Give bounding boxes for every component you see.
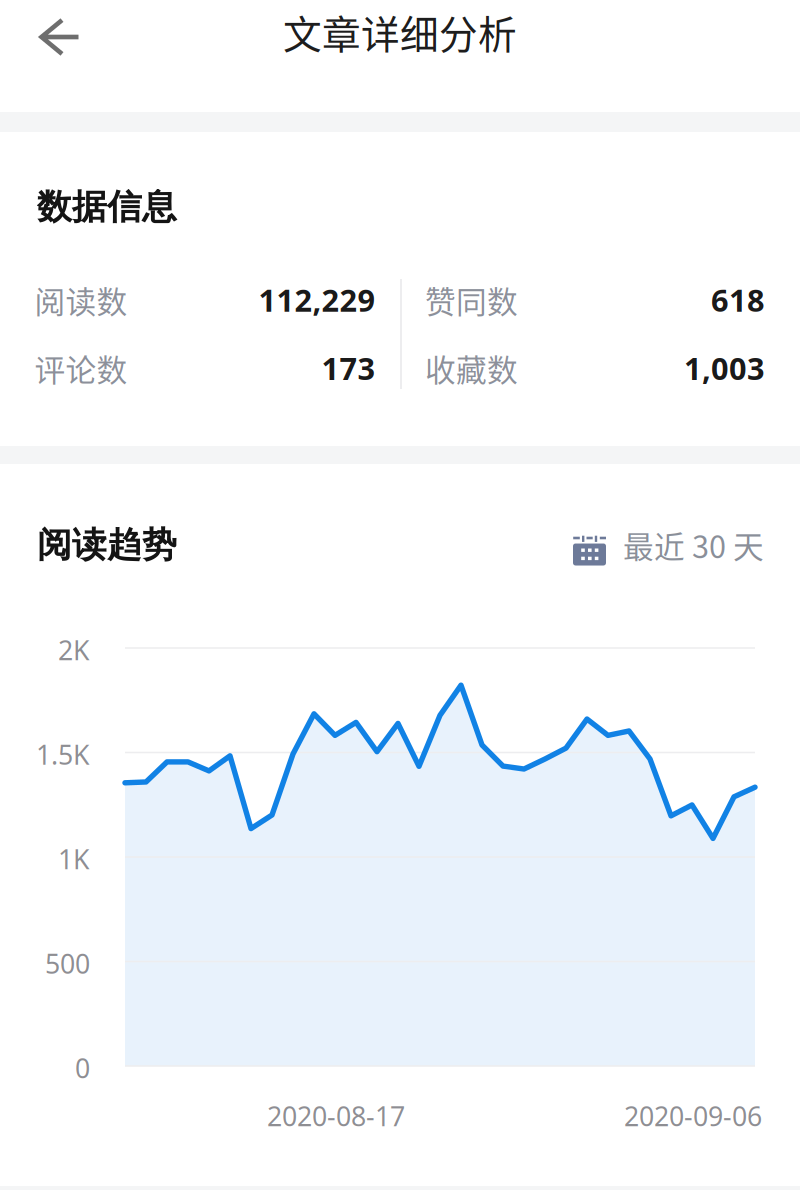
staticText: 2020-09-06 bbox=[624, 1098, 762, 1134]
staticText: 阅读数 bbox=[34, 278, 127, 322]
staticText: 1.5K bbox=[36, 737, 90, 772]
staticText: 数据信息 bbox=[37, 185, 177, 229]
staticText: 618 bbox=[711, 279, 765, 320]
button[interactable]: Back bbox=[0, 0, 108, 87]
staticText: 500 bbox=[45, 946, 90, 981]
staticText: 收藏数 bbox=[425, 346, 518, 390]
staticText: 1,003 bbox=[684, 348, 765, 388]
staticText: 文章详细分析 bbox=[283, 4, 517, 60]
button[interactable]: 最近 30 天 bbox=[576, 523, 764, 567]
staticText: 1K bbox=[58, 841, 90, 877]
staticText: 173 bbox=[321, 348, 375, 388]
staticText: 最近 30 天 bbox=[623, 523, 764, 567]
staticText: 2K bbox=[58, 632, 90, 668]
staticText: 2020-08-17 bbox=[267, 1098, 405, 1134]
staticText: 评论数 bbox=[34, 346, 127, 390]
staticText: 112,229 bbox=[258, 279, 375, 320]
staticText: 0 bbox=[75, 1050, 90, 1086]
staticText: 赞同数 bbox=[425, 278, 518, 322]
staticText: 阅读趋势 bbox=[37, 523, 177, 567]
